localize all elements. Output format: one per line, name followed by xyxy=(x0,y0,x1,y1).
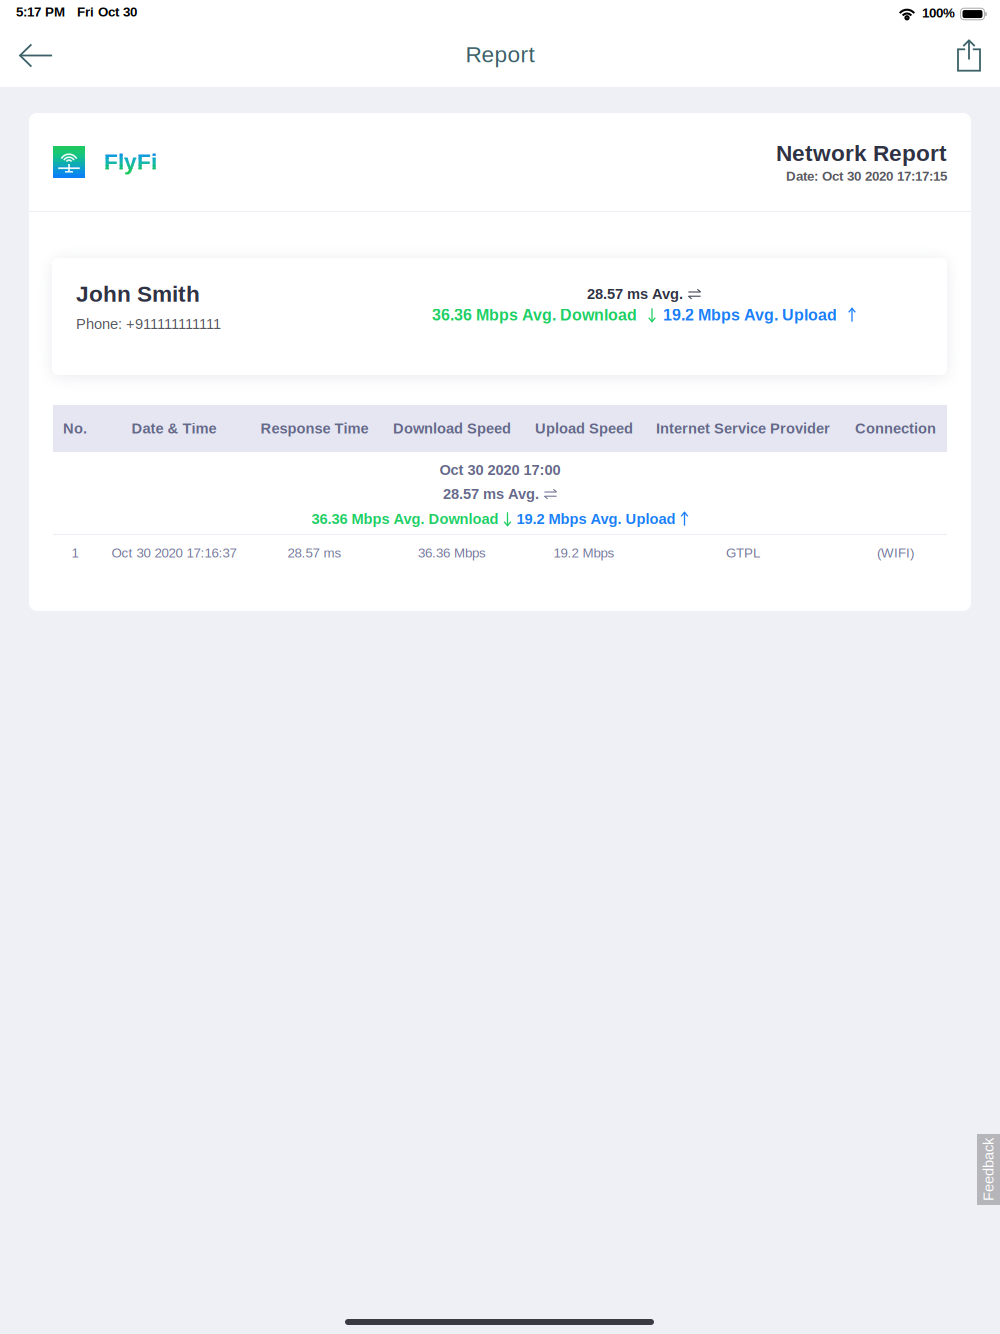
staticText: 36.36 Mbps Avg. Download xyxy=(432,306,637,324)
staticText: 36.36 Mbps Avg. Download xyxy=(311,511,498,527)
staticText: FlyFi xyxy=(104,149,157,174)
staticText: No. xyxy=(63,420,87,437)
staticText: GTPL xyxy=(726,546,760,560)
staticText: FlyFi xyxy=(104,149,157,174)
staticText: Report xyxy=(465,42,534,67)
staticText: Fri Oct 30 xyxy=(77,5,137,19)
staticText: FlyFi xyxy=(104,149,157,174)
staticText: 100% xyxy=(922,6,955,20)
staticText: Feedback xyxy=(957,1161,1000,1178)
staticText: 28.57 ms Avg. xyxy=(443,486,539,502)
staticText: Connection xyxy=(855,420,936,437)
staticText: FlyFi xyxy=(104,149,157,174)
staticText: FlyFi xyxy=(104,149,157,174)
staticText: Date & Time xyxy=(131,420,216,437)
staticText: (WIFI) xyxy=(877,546,914,560)
staticText: FlyFi xyxy=(104,149,157,174)
staticText: Oct 30 2020 17:00 xyxy=(439,462,560,478)
staticText: Phone: +911111111111 xyxy=(76,316,221,332)
staticText: 36.36 Mbps xyxy=(418,546,486,560)
staticText: Response Time xyxy=(260,420,368,437)
staticText: 1 xyxy=(71,546,78,560)
staticText: Date: Oct 30 2020 17:17:15 xyxy=(786,169,947,184)
staticText: FlyFi xyxy=(104,149,157,174)
staticText: Oct 30 2020 17:16:37 xyxy=(111,546,236,560)
staticText: FlyFi xyxy=(104,149,157,174)
staticText: 19.2 Mbps xyxy=(553,546,614,560)
button[interactable]: Back xyxy=(0,28,66,87)
button[interactable]: Share xyxy=(938,28,1000,87)
staticText: Network Report xyxy=(776,140,947,166)
staticText: Upload Speed xyxy=(535,420,633,437)
staticText: John Smith xyxy=(76,281,200,307)
staticText: 28.57 ms xyxy=(287,546,341,560)
staticText: 19.2 Mbps Avg. Upload xyxy=(516,511,675,527)
button[interactable]: Feedback xyxy=(977,1134,1000,1205)
staticText: Download Speed xyxy=(393,420,511,437)
staticText: 5:17 PM xyxy=(16,5,65,19)
staticText: Internet Service Provider xyxy=(656,420,830,437)
staticText: 28.57 ms Avg. xyxy=(587,286,683,302)
staticText: 19.2 Mbps Avg. Upload xyxy=(663,306,837,324)
